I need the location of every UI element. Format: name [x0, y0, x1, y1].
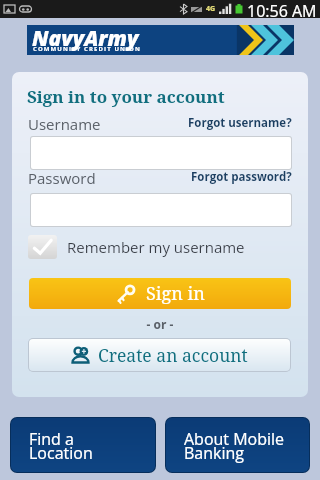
staticText: COMMUNITY CREDIT UNION — [33, 45, 141, 53]
staticText: Create an account — [98, 343, 248, 367]
staticText: Forgot password? — [191, 169, 292, 185]
staticText: - or - — [12, 316, 308, 332]
button[interactable]: Remember my username — [28, 234, 245, 260]
button[interactable]: Forgot username? — [188, 115, 292, 131]
button[interactable]: Sign in — [29, 278, 291, 309]
staticText: 10:56 AM — [247, 0, 317, 18]
staticText: Password — [28, 168, 96, 188]
staticText: NavyArmy — [32, 24, 139, 53]
staticText: 4G — [206, 4, 216, 14]
staticText: Username — [28, 114, 101, 134]
button[interactable]: About Mobile Banking — [166, 418, 309, 472]
staticText: About Mobile Banking — [184, 428, 285, 464]
staticText: Forgot username? — [188, 115, 292, 131]
staticText: Remember my username — [67, 237, 245, 257]
staticText: Sign in to your account — [27, 85, 225, 108]
button[interactable]: Find a Location — [11, 418, 155, 472]
staticText: Find a Location — [29, 428, 93, 464]
button[interactable]: Forgot password? — [191, 169, 292, 185]
button[interactable]: Create an account — [29, 339, 290, 371]
staticText: Sign in — [146, 281, 205, 306]
